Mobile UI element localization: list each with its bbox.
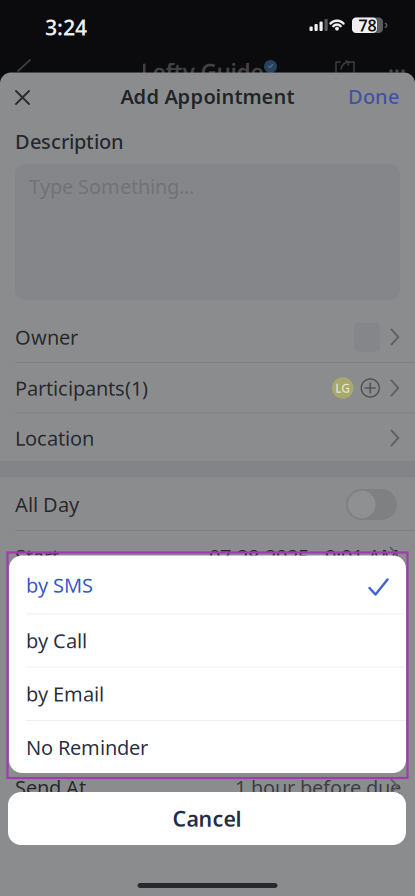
staticText: by SMS — [26, 572, 93, 598]
staticText: Start — [15, 543, 59, 570]
button[interactable]: No Reminder — [9, 721, 406, 773]
staticText: by Call — [26, 627, 87, 654]
staticText: Owner — [15, 324, 78, 350]
staticText: Done — [348, 83, 399, 110]
staticText: Add Appointment — [120, 83, 294, 110]
button[interactable]: Cancel — [8, 792, 406, 845]
button[interactable]: Start — [15, 543, 400, 567]
button[interactable]: Owner — [15, 312, 400, 362]
staticText: 9:01 AM — [325, 543, 399, 570]
staticText: LG — [335, 380, 350, 396]
button[interactable]: Done — [348, 83, 399, 110]
button[interactable]: by Email — [9, 667, 406, 720]
button[interactable]: Send At — [15, 774, 400, 798]
staticText: Type Something... — [29, 173, 194, 200]
staticText: Description — [15, 128, 124, 155]
staticText: Participants(1) — [15, 375, 148, 401]
staticText: 78 — [358, 15, 376, 36]
button[interactable]: by SMS — [9, 557, 406, 613]
staticText: by Email — [26, 680, 104, 707]
staticText: Cancel — [172, 804, 241, 833]
staticText: No Reminder — [26, 734, 148, 761]
staticText: 1 hour before due — [235, 774, 401, 801]
button[interactable]: Location — [15, 414, 400, 462]
staticText: Send At — [15, 774, 86, 801]
staticText: All Day — [15, 491, 79, 518]
staticText: 3:24 — [45, 13, 87, 41]
button[interactable]: Participants(1) — [15, 363, 400, 413]
button[interactable]: All Day — [346, 489, 397, 520]
button[interactable]: Close — [12, 87, 33, 108]
staticText: Lefty Guide — [140, 57, 263, 87]
button[interactable]: by Call — [9, 614, 406, 666]
staticText: 07-28-2025 — [209, 543, 309, 570]
staticText: Location — [15, 425, 94, 451]
